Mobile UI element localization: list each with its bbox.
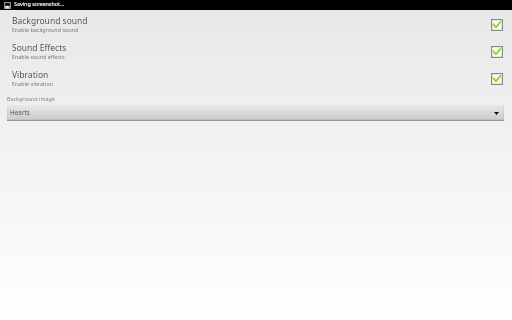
staticText: Enable vibration [12,80,54,87]
other: Screenshot saved [4,2,11,9]
button[interactable]: Vibration [0,68,512,95]
staticText: Hearts [10,108,30,117]
staticText: Background image [7,95,55,102]
button[interactable]: Toggle Vibration [491,73,503,85]
button[interactable]: Toggle Background sound [491,19,503,31]
staticText: Background sound [12,15,88,27]
button[interactable]: Hearts [7,105,504,121]
button[interactable]: Toggle Sound Effects [491,46,503,58]
staticText: Sound Effects [12,42,67,54]
staticText: Vibration [12,69,49,81]
button[interactable]: Sound Effects [0,41,512,68]
button[interactable]: Background sound [0,14,512,41]
staticText: Enable background sound [12,26,79,33]
staticText: Enable sound effects [12,53,65,60]
staticText: Saving screenshot… [14,0,65,7]
